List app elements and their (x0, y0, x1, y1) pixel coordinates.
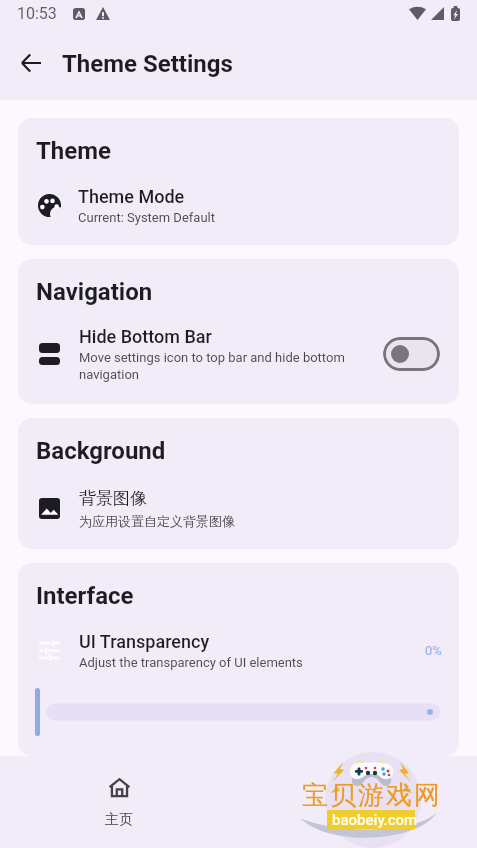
button[interactable]: Hide Bottom Bar (18, 317, 459, 391)
staticText: 设置 (344, 811, 372, 829)
staticText: 宝贝游戏网 (301, 779, 441, 812)
button[interactable]: 背景图像 (18, 481, 459, 535)
button[interactable]: Theme Mode (18, 180, 459, 230)
staticText: Background (36, 437, 166, 465)
button[interactable]: UI transparency slider (18, 686, 459, 738)
staticText: 背景图像 (79, 488, 147, 509)
button[interactable]: Back (10, 42, 52, 84)
staticText: 主页 (105, 811, 133, 829)
staticText: Move settings icon to top bar and hide b… (79, 350, 345, 383)
staticText: Theme Mode (78, 186, 185, 207)
button[interactable]: Hide bottom bar toggle (383, 337, 440, 371)
button[interactable]: 主页 (0, 756, 238, 848)
staticText: UI Transparency (79, 631, 210, 652)
staticText: 为应用设置自定义背景图像 (79, 513, 235, 529)
staticText: 0% (425, 643, 442, 658)
staticText: Theme Settings (62, 50, 233, 78)
button[interactable]: 设置 (238, 756, 477, 848)
staticText: Adjust the transparency of UI elements (79, 655, 303, 670)
staticText: Hide Bottom Bar (79, 326, 212, 347)
staticText: Theme (36, 137, 112, 165)
staticText: baobeiy.com (332, 811, 418, 829)
staticText: Navigation (36, 278, 153, 306)
staticText: Current: System Default (78, 210, 215, 225)
staticText: 10:53 (17, 4, 57, 23)
staticText: Interface (36, 582, 134, 610)
